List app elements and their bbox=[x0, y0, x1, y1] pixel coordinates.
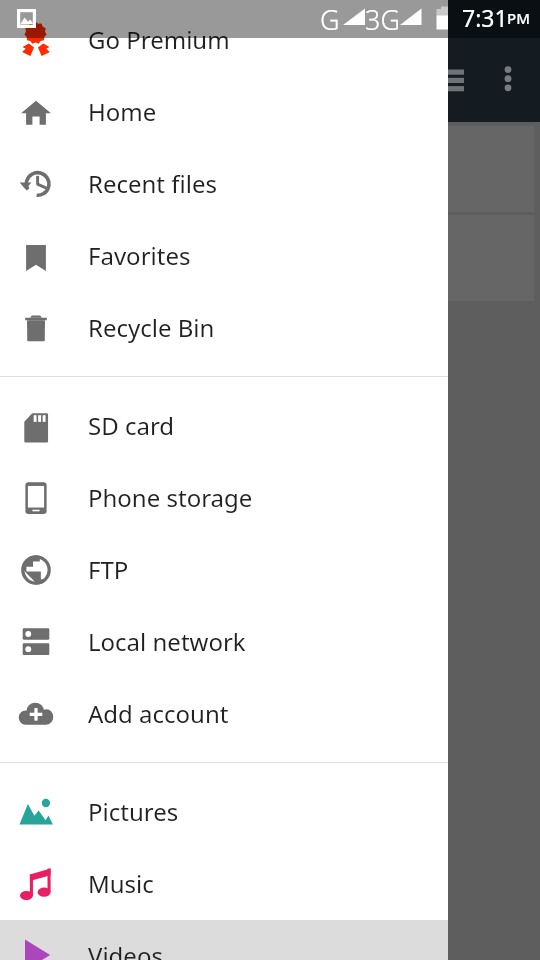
staticText: Recent files bbox=[88, 167, 217, 200]
staticText: SD card bbox=[88, 409, 175, 442]
staticText: Phone storage bbox=[88, 481, 253, 514]
button[interactable]: Open navigation drawer bbox=[418, 55, 466, 103]
button[interactable]: Phone storage bbox=[0, 462, 448, 534]
staticText: Home bbox=[88, 95, 157, 128]
button[interactable]: Pictures bbox=[0, 776, 448, 848]
button[interactable]: SD card bbox=[0, 390, 448, 462]
button[interactable]: Home bbox=[0, 76, 448, 148]
staticText: Music bbox=[88, 867, 154, 900]
staticText: PM bbox=[507, 8, 530, 28]
staticText: Add account bbox=[88, 697, 229, 730]
button[interactable]: Go Premium bbox=[0, 4, 448, 76]
staticText: Favorites bbox=[88, 239, 191, 272]
button[interactable]: More options bbox=[480, 55, 528, 103]
button[interactable]: Local network bbox=[0, 606, 448, 678]
button[interactable]: Recycle Bin bbox=[0, 292, 448, 364]
button[interactable]: Recent files bbox=[0, 148, 448, 220]
staticText: Pictures bbox=[88, 795, 179, 828]
staticText: 3G bbox=[365, 1, 400, 38]
staticText: 7:31 bbox=[462, 2, 508, 33]
staticText: G bbox=[320, 1, 340, 38]
button[interactable]: Add account bbox=[0, 678, 448, 750]
staticText: FTP bbox=[88, 553, 129, 586]
staticText: Go Premium bbox=[88, 23, 230, 56]
staticText: Local network bbox=[88, 625, 246, 658]
button[interactable]: Videos bbox=[0, 920, 448, 960]
button[interactable]: Music bbox=[0, 848, 448, 920]
button[interactable]: Favorites bbox=[0, 220, 448, 292]
staticText: Videos bbox=[88, 939, 163, 960]
button[interactable]: FTP bbox=[0, 534, 448, 606]
staticText: Recycle Bin bbox=[88, 311, 215, 344]
